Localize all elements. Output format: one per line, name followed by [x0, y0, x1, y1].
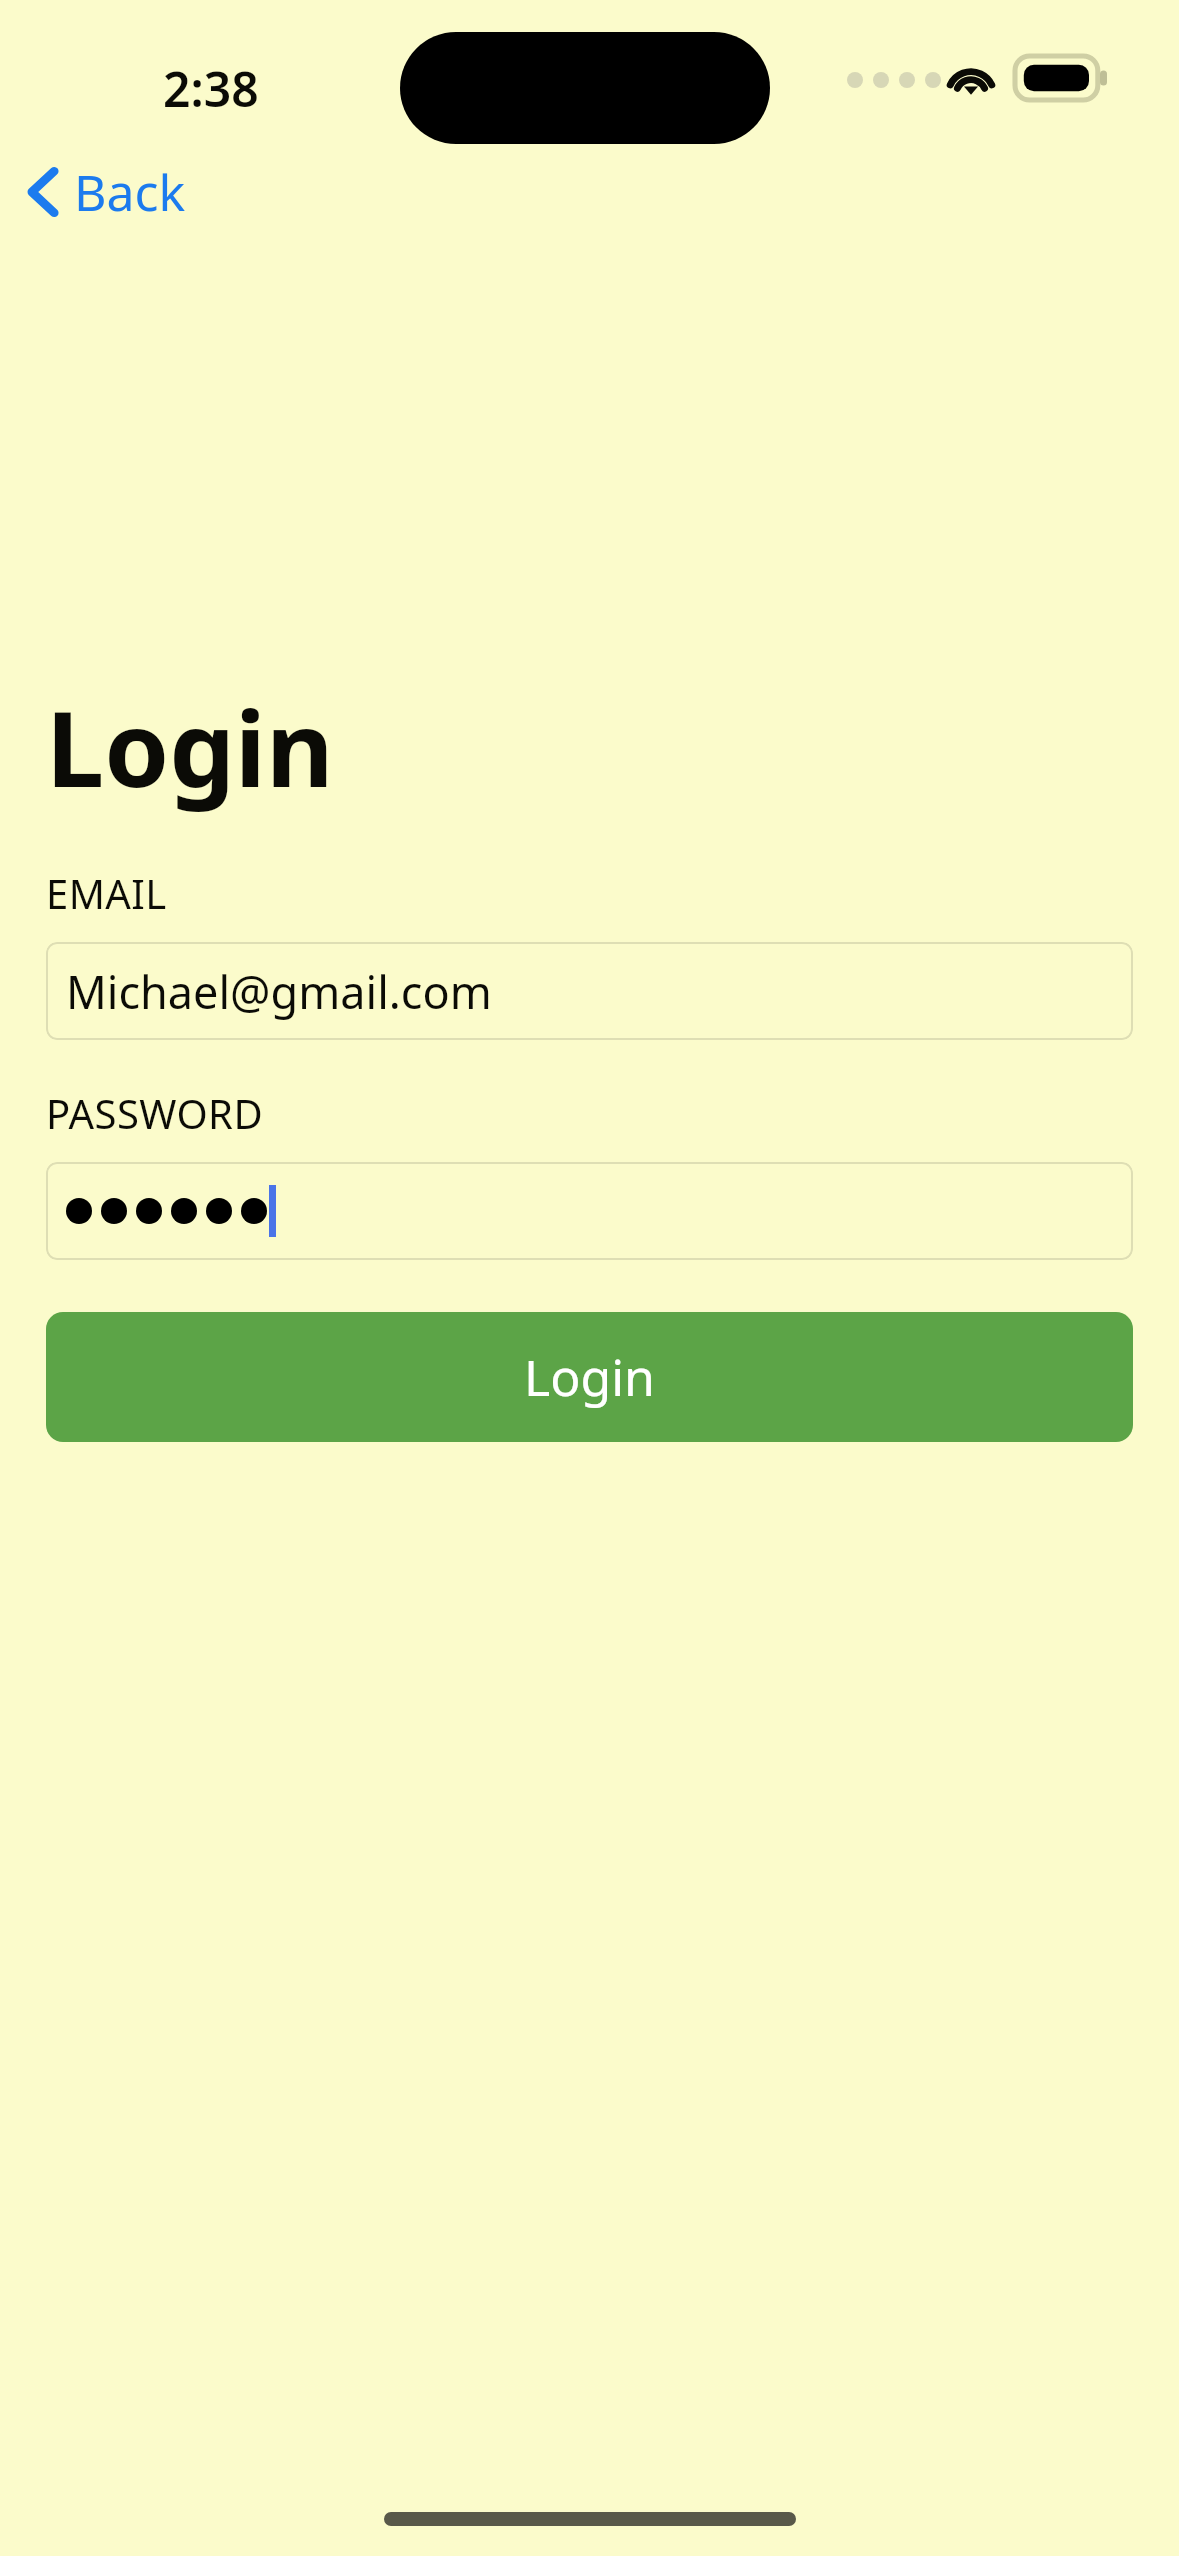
other: Back: [28, 166, 60, 218]
staticText: 2:38: [163, 56, 259, 121]
staticText: Michael@gmail.com: [66, 961, 492, 1022]
button[interactable]: Back: [14, 148, 208, 236]
staticText: Back: [74, 158, 186, 226]
button[interactable]: Login: [46, 1312, 1133, 1442]
staticText: PASSWORD: [46, 1086, 263, 1140]
button[interactable]: Michael@gmail.com: [46, 942, 1133, 1040]
staticText: Login: [524, 1343, 655, 1411]
staticText: Login: [46, 676, 334, 818]
button[interactable]: [46, 1162, 1133, 1260]
staticText: EMAIL: [46, 866, 167, 920]
